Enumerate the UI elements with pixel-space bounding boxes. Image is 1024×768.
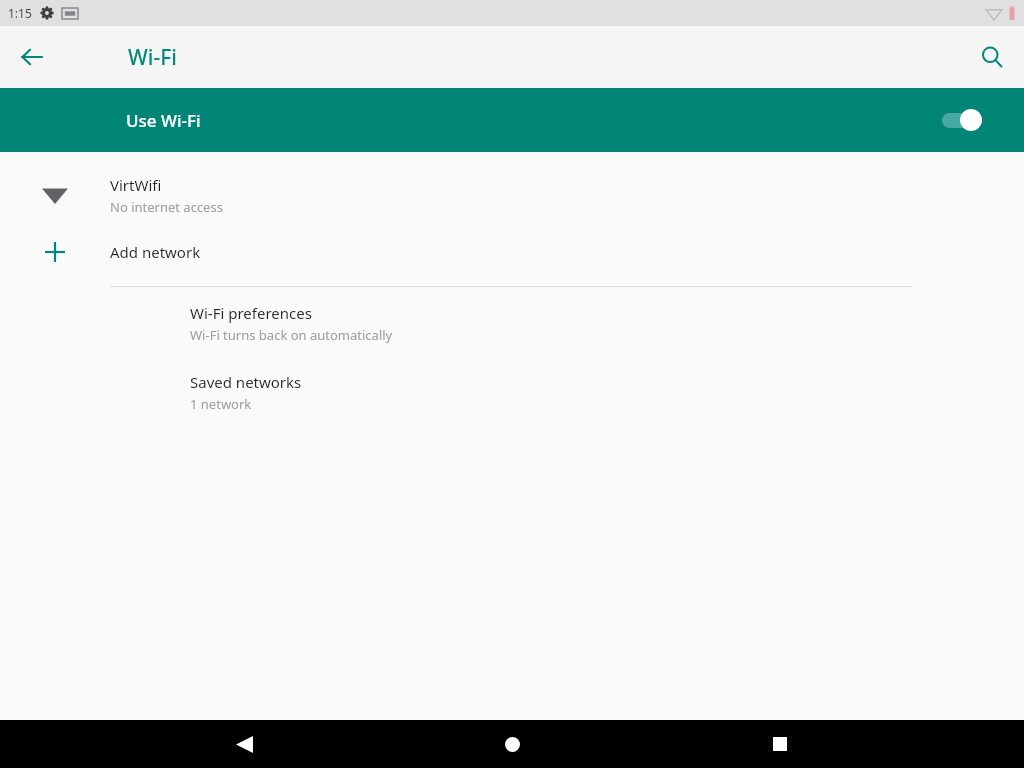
- staticText: No internet access: [110, 198, 223, 216]
- staticText: 1:15: [8, 5, 32, 21]
- staticText: Wi-Fi turns back on automatically: [190, 326, 393, 344]
- staticText: Wi-Fi: [128, 43, 177, 72]
- button[interactable]: Wi-Fi preferences: [0, 297, 1024, 350]
- button[interactable]: VirtWifi: [0, 164, 1024, 226]
- button[interactable]: Back: [220, 720, 268, 768]
- button[interactable]: Home: [488, 720, 536, 768]
- button[interactable]: Back: [8, 33, 56, 81]
- staticText: Saved networks: [190, 372, 302, 392]
- button[interactable]: Add network: [0, 226, 1024, 278]
- staticText: Use Wi-Fi: [126, 109, 201, 132]
- staticText: Add network: [110, 242, 201, 262]
- staticText: VirtWifi: [110, 175, 162, 195]
- button[interactable]: Use Wi-Fi: [0, 88, 1024, 152]
- button[interactable]: Search: [968, 33, 1016, 81]
- staticText: Wi-Fi preferences: [190, 303, 312, 323]
- button[interactable]: Saved networks: [0, 366, 1024, 419]
- staticText: 1 network: [190, 395, 252, 413]
- button[interactable]: Recents: [756, 720, 804, 768]
